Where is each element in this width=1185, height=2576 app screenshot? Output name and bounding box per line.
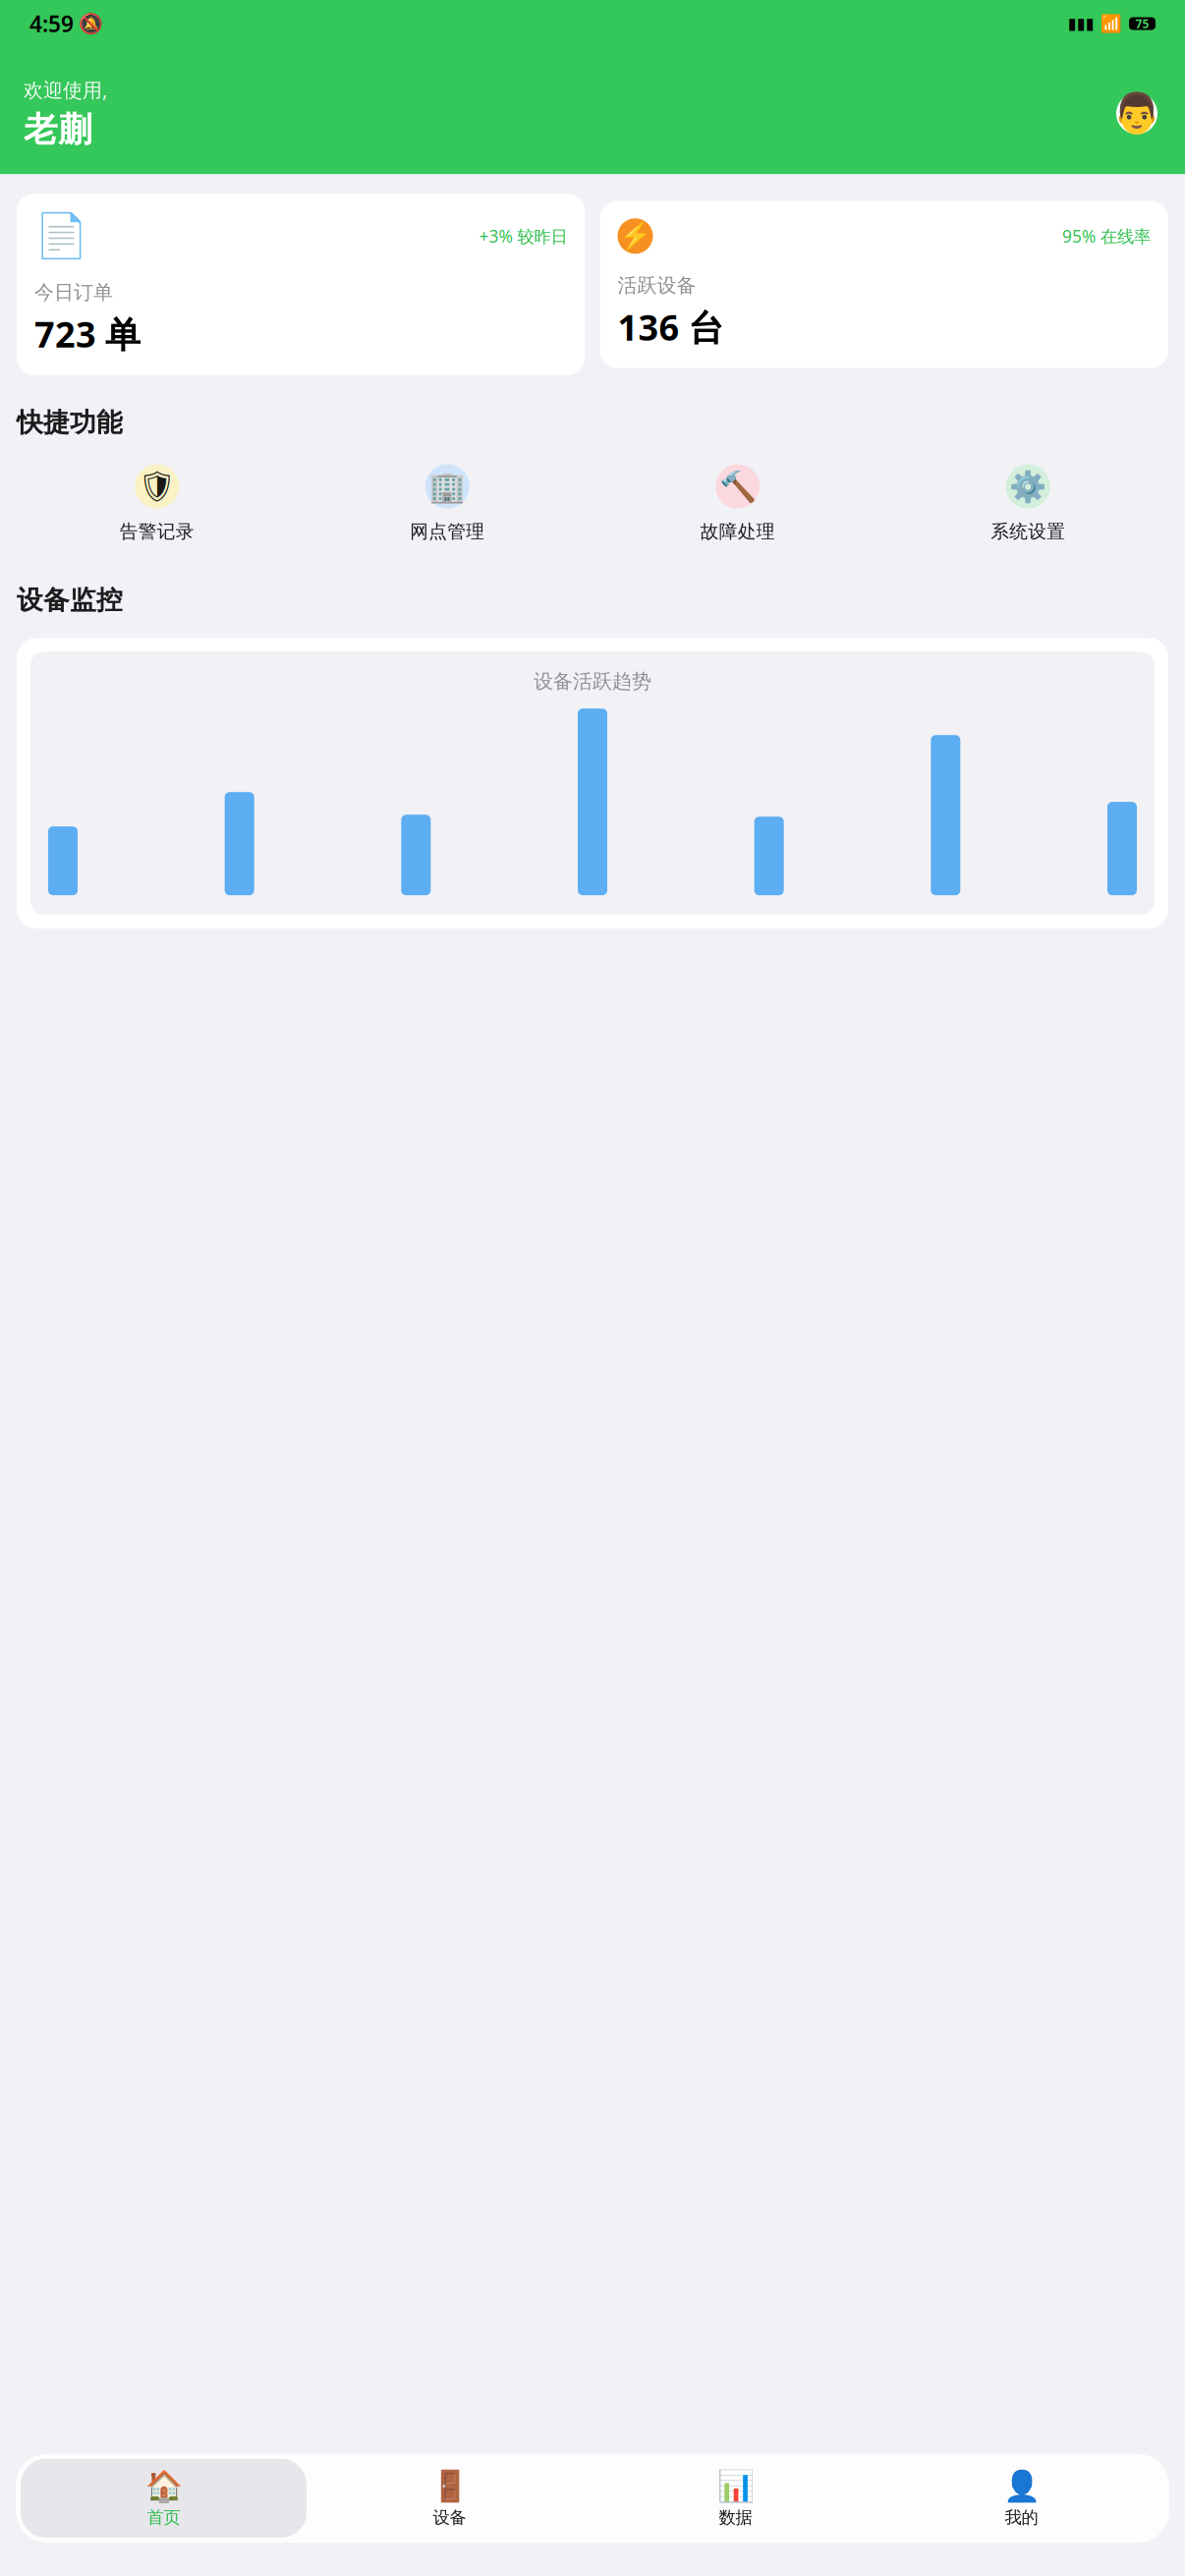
staticText: 📊 — [717, 2469, 754, 2503]
staticText: 📄 — [34, 211, 88, 261]
staticText: 95% 在线率 — [1062, 225, 1151, 247]
button[interactable]: 🛡 — [12, 464, 302, 543]
staticText: 故障处理 — [700, 520, 775, 543]
staticText: 75 — [1135, 16, 1149, 31]
staticText: ▮▮▮ — [1068, 15, 1095, 33]
button[interactable]: ⚙️ — [883, 464, 1173, 543]
button[interactable]: 🏢 — [302, 464, 592, 543]
staticText: 我的 — [1005, 2507, 1038, 2528]
button[interactable]: ⚡ — [600, 201, 1168, 368]
staticText: 🔕 — [79, 12, 103, 35]
staticText: ⚙️ — [1009, 469, 1047, 504]
staticText: 首页 — [147, 2507, 180, 2528]
staticText: 🔨 — [719, 469, 756, 504]
staticText: 系统设置 — [991, 520, 1065, 543]
staticText: 🏠 — [145, 2469, 182, 2503]
staticText: 👨 — [1112, 91, 1161, 136]
staticText: 设备 — [433, 2507, 466, 2528]
staticText: 告警记录 — [120, 520, 194, 543]
staticText: 活跃设备 — [618, 273, 696, 298]
button[interactable]: 🚪 — [307, 2459, 592, 2538]
button[interactable]: 个人头像 — [1112, 91, 1161, 136]
staticText: 136 台 — [618, 303, 724, 350]
button[interactable]: 📄 — [17, 194, 585, 375]
staticText: 🛡 — [138, 469, 176, 504]
button[interactable]: 🔨 — [592, 464, 883, 543]
staticText: 🚪 — [431, 2469, 468, 2503]
staticText: 网点管理 — [410, 520, 485, 543]
button[interactable]: 👤 — [878, 2459, 1164, 2538]
staticText: ⚡ — [619, 221, 651, 251]
button[interactable]: 🏠 — [21, 2459, 307, 2538]
staticText: 数据 — [719, 2507, 752, 2528]
staticText: 快捷功能 — [17, 407, 123, 439]
staticText: 📶 — [1100, 14, 1122, 33]
staticText: 🏢 — [429, 469, 466, 504]
staticText: 723 单 — [34, 310, 141, 357]
staticText: +3% 较昨日 — [479, 225, 567, 247]
staticText: 设备监控 — [17, 584, 123, 616]
staticText: 欢迎使用, — [24, 77, 107, 103]
staticText: 设备活跃趋势 — [534, 669, 651, 693]
button[interactable]: 📊 — [592, 2459, 878, 2538]
staticText: 👤 — [1003, 2469, 1040, 2503]
staticText: 今日订单 — [34, 280, 113, 305]
staticText: 老蒯 — [24, 109, 92, 151]
staticText: 4:59 — [29, 9, 74, 38]
